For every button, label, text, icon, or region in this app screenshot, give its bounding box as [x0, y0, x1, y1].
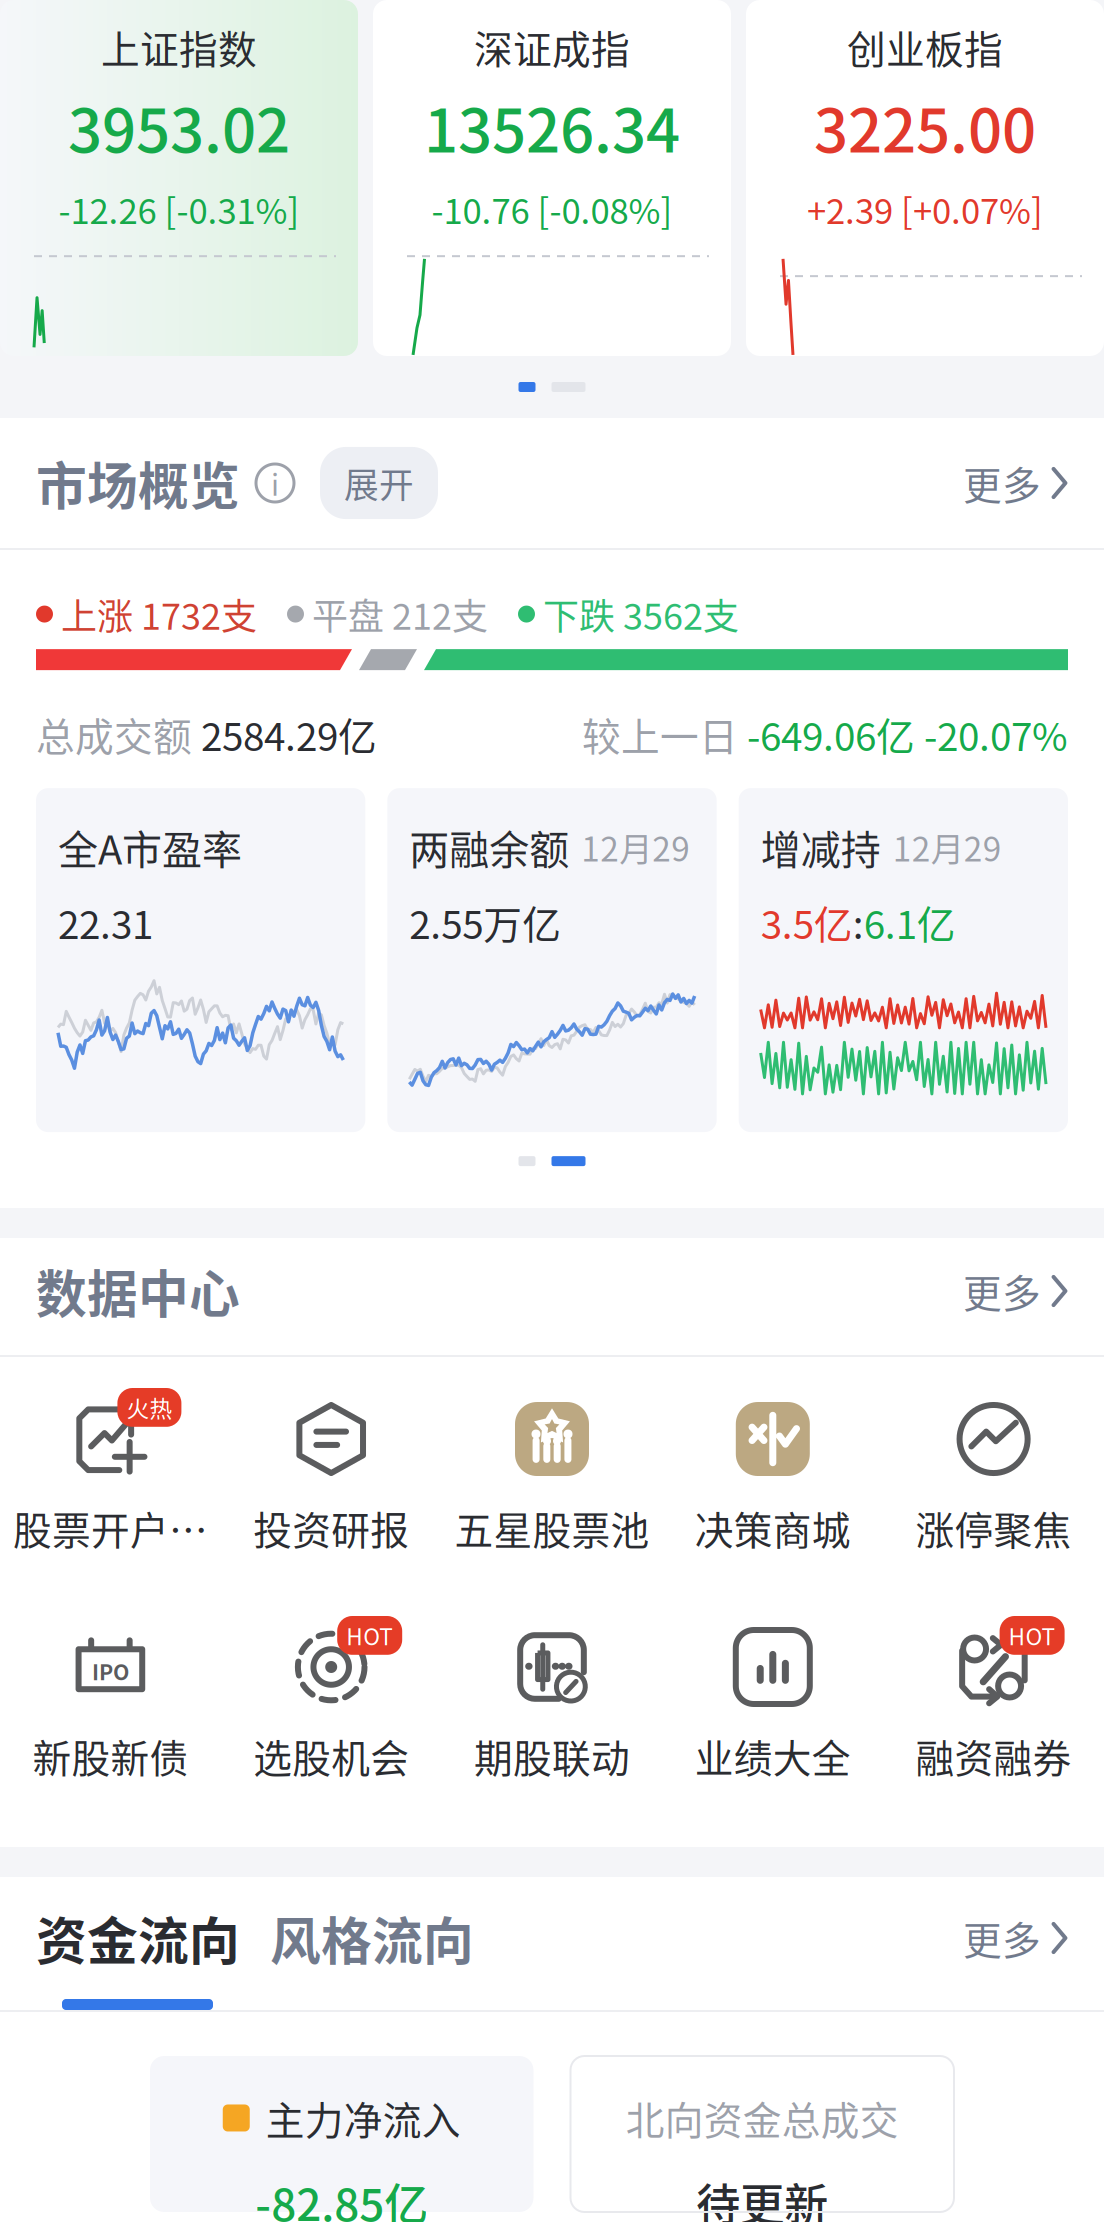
button[interactable]: 更多 [963, 1910, 1068, 1966]
staticText: 融资融券 [916, 1728, 1072, 1784]
staticText: 全A市盈率 [58, 818, 242, 876]
button[interactable]: 投资研报 [221, 1402, 442, 1556]
staticText: 创业板指 [847, 19, 1003, 75]
staticText: -12.26 [-0.31%] [58, 184, 299, 234]
staticText: 上涨 1732支 [53, 588, 257, 640]
staticText: 新股新债 [32, 1728, 188, 1784]
button[interactable]: 上证指数 [0, 0, 358, 356]
button[interactable]: 全A市盈率 [36, 788, 365, 1132]
button[interactable]: HOT [221, 1630, 442, 1784]
button[interactable]: 业绩大全 [662, 1630, 883, 1784]
staticText: 较上一日 [582, 706, 747, 762]
staticText: 北向资金总成交 [626, 2090, 899, 2146]
button[interactable]: 主力净流入 [150, 2056, 533, 2212]
button[interactable]: 涨停聚焦 [883, 1402, 1104, 1556]
staticText: 深证成指 [474, 19, 630, 75]
staticText: 火热 [126, 1391, 172, 1424]
staticText: 风格流向 [270, 1901, 474, 1975]
staticText: 决策商城 [695, 1500, 851, 1556]
staticText: 12月29 [893, 823, 1002, 871]
button[interactable]: 北向资金总成交 [570, 2056, 954, 2212]
button[interactable]: 五星股票池 [442, 1402, 662, 1556]
staticText: 选股机会 [253, 1728, 409, 1784]
staticText: 两融余额 [409, 818, 569, 876]
staticText: -649.06亿 -20.07% [747, 706, 1068, 762]
button[interactable]: IPO [0, 1630, 221, 1784]
button[interactable]: 决策商城 [662, 1402, 883, 1556]
staticText: 期股联动 [474, 1728, 630, 1784]
button[interactable]: 创业板指 [746, 0, 1104, 356]
button[interactable]: 增减持 [739, 788, 1068, 1132]
staticText: 平盘 212支 [304, 588, 488, 640]
staticText: IPO [92, 1656, 129, 1686]
staticText: 12月29 [581, 823, 690, 871]
staticText: HOT [346, 1619, 393, 1652]
staticText: 更多 [963, 1910, 1041, 1966]
staticText: : [853, 894, 864, 950]
staticText: -82.85亿 [255, 2170, 428, 2222]
staticText: 6.1亿 [864, 894, 956, 950]
button[interactable]: 更多 [963, 455, 1068, 511]
staticText: 业绩大全 [695, 1728, 851, 1784]
staticText: 2.55万亿 [409, 894, 561, 950]
staticText: 市场概览 [36, 446, 240, 520]
button[interactable]: 深证成指 [373, 0, 731, 356]
button[interactable]: 期股联动 [442, 1630, 662, 1784]
staticText: 展开 [344, 458, 414, 508]
staticText: 增减持 [761, 818, 881, 876]
staticText: 涨停聚焦 [916, 1500, 1072, 1556]
staticText: 3225.00 [814, 83, 1036, 170]
staticText: -10.76 [-0.08%] [431, 184, 672, 234]
staticText: 更多 [963, 1263, 1041, 1319]
button[interactable]: HOT [883, 1630, 1104, 1784]
button[interactable]: 展开 [320, 447, 438, 519]
staticText: 股票开户… [13, 1500, 208, 1556]
button[interactable]: 两融余额 [387, 788, 717, 1132]
staticText: 下跌 3562支 [535, 588, 739, 640]
button[interactable]: 说明 [256, 464, 294, 502]
button[interactable]: 火热 [0, 1402, 221, 1556]
staticText: 更多 [963, 455, 1041, 511]
staticText: 22.31 [58, 894, 153, 950]
button[interactable]: 更多 [963, 1263, 1068, 1319]
staticText: 主力净流入 [266, 2090, 461, 2146]
staticText: i [271, 462, 279, 504]
staticText: 3.5亿 [761, 894, 853, 950]
staticText: +2.39 [+0.07%] [807, 184, 1043, 234]
button[interactable]: 风格流向 [270, 1901, 474, 1975]
staticText: 3953.02 [68, 83, 290, 170]
staticText: 数据中心 [36, 1254, 240, 1328]
staticText: HOT [1009, 1619, 1056, 1652]
staticText: 13526.34 [424, 83, 680, 170]
staticText: 总成交额 [36, 706, 201, 762]
staticText: 待更新 [696, 2170, 828, 2222]
staticText: 上证指数 [101, 19, 257, 75]
button[interactable]: 资金流向 [36, 1901, 240, 1975]
staticText: 资金流向 [36, 1901, 240, 1975]
staticText: 五星股票池 [454, 1500, 649, 1556]
staticText: 2584.29亿 [201, 706, 377, 762]
staticText: 投资研报 [253, 1500, 409, 1556]
